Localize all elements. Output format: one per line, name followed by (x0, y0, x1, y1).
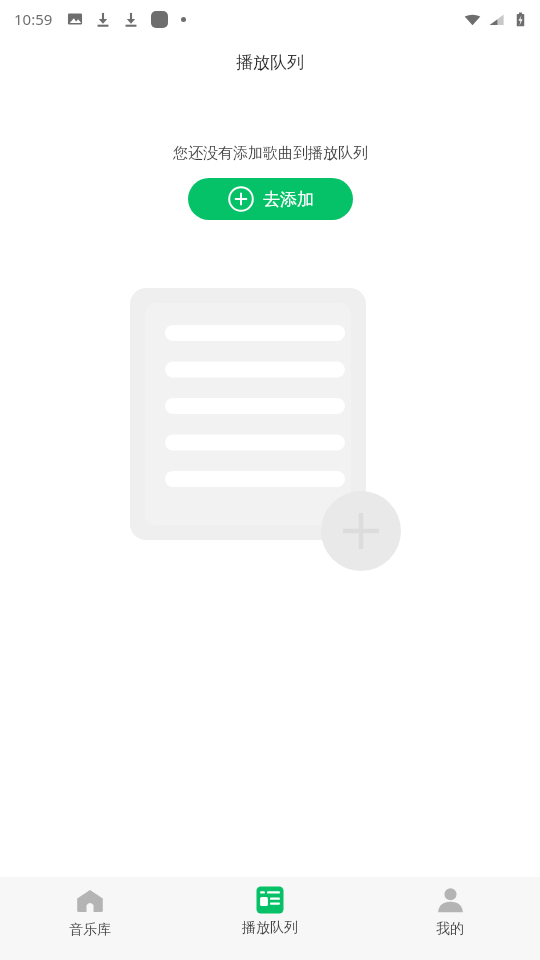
staticText: 音乐库 (69, 921, 111, 939)
button[interactable]: 播放队列 (180, 877, 360, 960)
button[interactable]: 我的 (360, 877, 540, 960)
staticText: 播放队列 (236, 52, 304, 73)
button[interactable]: 去添加 (188, 178, 353, 220)
button[interactable]: 音乐库 (0, 877, 180, 960)
staticText: 您还没有添加歌曲到播放队列 (173, 144, 368, 163)
staticText: 播放队列 (242, 919, 298, 937)
staticText: 我的 (436, 920, 464, 938)
staticText: 10:59 (14, 9, 53, 29)
staticText: 去添加 (263, 189, 314, 210)
